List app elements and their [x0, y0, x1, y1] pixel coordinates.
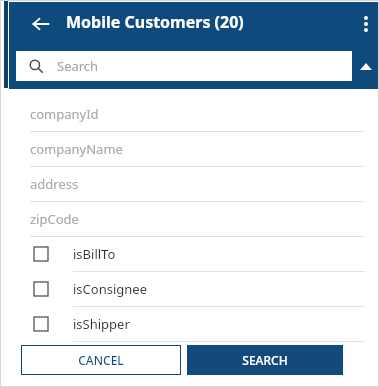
- staticText: isBillTo: [73, 245, 116, 263]
- button[interactable]: isConsignee: [9, 272, 379, 307]
- staticText: isShipper: [73, 315, 130, 333]
- button[interactable]: isBillTo: [9, 237, 379, 272]
- staticText: Search: [57, 57, 99, 75]
- staticText: address: [30, 175, 79, 193]
- button[interactable]: zipCode: [9, 202, 379, 237]
- staticText: companyId: [30, 105, 99, 123]
- button[interactable]: Back: [26, 9, 56, 39]
- staticText: zipCode: [30, 210, 79, 228]
- button[interactable]: Collapse: [354, 51, 378, 81]
- button[interactable]: address: [9, 167, 379, 202]
- staticText: isConsignee: [73, 280, 147, 298]
- button[interactable]: More options: [353, 7, 379, 41]
- button[interactable]: Search: [16, 51, 352, 81]
- button[interactable]: CANCEL: [21, 345, 181, 375]
- staticText: SEARCH: [242, 352, 288, 368]
- button[interactable]: companyName: [9, 132, 379, 167]
- button[interactable]: isShipper: [9, 307, 379, 342]
- staticText: CANCEL: [78, 352, 124, 368]
- staticText: companyName: [30, 140, 123, 158]
- button[interactable]: companyId: [9, 97, 379, 132]
- button[interactable]: SEARCH: [187, 345, 343, 375]
- staticText: Mobile Customers (20): [66, 11, 244, 33]
